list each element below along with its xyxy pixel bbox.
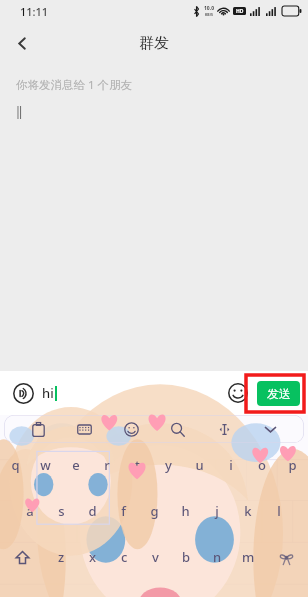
staticText: v xyxy=(152,548,159,566)
staticText: HD xyxy=(236,8,244,15)
staticText: b xyxy=(182,548,191,566)
button[interactable]: i xyxy=(215,449,246,481)
staticText: 11:11 xyxy=(20,4,49,19)
staticText: 你将发消息给 1 个朋友 xyxy=(16,77,133,93)
button[interactable]: Cursor control xyxy=(211,416,237,442)
button[interactable]: Clipboard xyxy=(25,416,51,442)
staticText: f xyxy=(121,502,126,520)
staticText: KB/S xyxy=(205,12,214,17)
button[interactable]: n xyxy=(202,541,233,573)
staticText: ‖ xyxy=(16,103,23,119)
staticText: d xyxy=(88,502,97,520)
staticText: 群发 xyxy=(139,34,169,53)
staticText: w xyxy=(40,456,51,474)
button[interactable]: a xyxy=(14,495,46,527)
button[interactable]: Voice input xyxy=(8,378,38,408)
button[interactable]: z xyxy=(45,541,77,573)
button[interactable]: g xyxy=(139,495,170,527)
staticText: 发送 xyxy=(267,386,291,401)
button[interactable]: r xyxy=(91,449,122,481)
staticText: o xyxy=(258,456,266,474)
staticText: m xyxy=(242,548,255,566)
button[interactable]: t xyxy=(122,449,153,481)
button[interactable]: 发送 xyxy=(257,381,300,406)
staticText: hi xyxy=(42,384,54,402)
button[interactable]: Emoji xyxy=(223,378,253,408)
button[interactable]: Search xyxy=(164,416,190,442)
staticText: z xyxy=(58,548,65,566)
button[interactable]: d xyxy=(77,495,108,527)
button[interactable]: s xyxy=(46,495,77,527)
staticText: s xyxy=(58,502,65,520)
staticText: p xyxy=(288,456,297,474)
button[interactable]: l xyxy=(263,495,294,527)
button[interactable]: u xyxy=(184,449,215,481)
staticText: l xyxy=(277,502,281,520)
button[interactable]: Emoji picker xyxy=(118,416,144,442)
button[interactable]: x xyxy=(77,541,109,573)
button[interactable]: v xyxy=(140,541,171,573)
button[interactable]: c xyxy=(109,541,140,573)
staticText: a xyxy=(26,502,34,520)
staticText: k xyxy=(244,502,252,520)
staticText: c xyxy=(121,548,128,566)
button[interactable]: y xyxy=(153,449,184,481)
button[interactable]: k xyxy=(232,495,263,527)
staticText: h xyxy=(181,502,190,520)
button[interactable]: h xyxy=(170,495,201,527)
button[interactable]: o xyxy=(246,449,277,481)
button[interactable]: hi xyxy=(42,379,223,407)
staticText: y xyxy=(165,456,172,474)
staticText: x xyxy=(89,548,97,566)
button[interactable]: m xyxy=(233,541,264,573)
button[interactable]: p xyxy=(277,449,308,481)
staticText: e xyxy=(72,456,80,474)
staticText: t xyxy=(135,456,140,474)
staticText: n xyxy=(213,548,222,566)
button[interactable]: q xyxy=(0,449,30,481)
button[interactable]: Back xyxy=(4,25,40,61)
button[interactable]: Keyboard xyxy=(71,416,97,442)
staticText: r xyxy=(104,456,110,474)
staticText: i xyxy=(229,456,233,474)
button[interactable]: w xyxy=(30,449,60,481)
button[interactable]: e xyxy=(60,449,91,481)
staticText: u xyxy=(195,456,204,474)
staticText: q xyxy=(11,456,20,474)
staticText: g xyxy=(150,502,159,520)
staticText: j xyxy=(215,502,219,520)
button[interactable]: b xyxy=(171,541,202,573)
button[interactable]: j xyxy=(201,495,232,527)
button[interactable]: Shift xyxy=(0,541,45,573)
staticText: 10.0 xyxy=(204,5,214,12)
button[interactable]: f xyxy=(108,495,139,527)
button[interactable]: Collapse keyboard xyxy=(257,416,283,442)
button[interactable]: Backspace xyxy=(264,541,308,573)
